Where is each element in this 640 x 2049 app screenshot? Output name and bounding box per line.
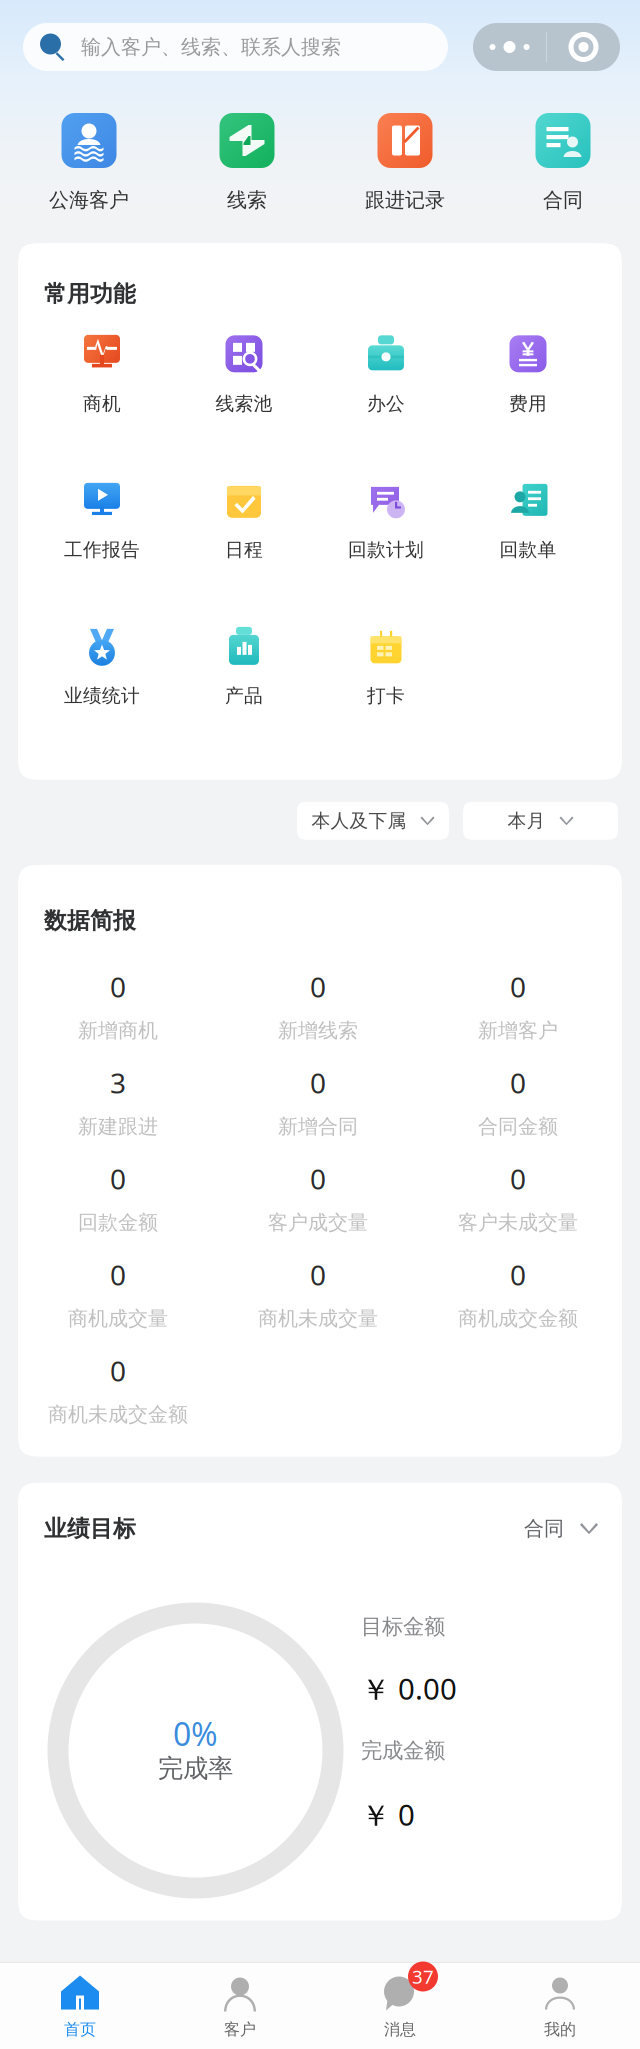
button[interactable]: 跟进记录 (326, 113, 484, 210)
staticText: 新增商机 (78, 1018, 158, 1043)
staticText: 商机未成交量 (258, 1306, 378, 1331)
staticText: 我的 (544, 2020, 576, 2039)
staticText: 新增客户 (478, 1018, 558, 1043)
staticText: 业绩目标 (44, 1515, 136, 1542)
button[interactable]: 日程 (173, 476, 315, 562)
button[interactable]: 费用 (457, 330, 599, 416)
staticText: 首页 (64, 2020, 96, 2039)
staticText: 3 (110, 1064, 126, 1101)
staticText: 0 (310, 968, 326, 1005)
staticText: 常用功能 (44, 280, 136, 308)
staticText: 完成金额 (361, 1737, 445, 1764)
staticText: 客户 (224, 2020, 256, 2039)
button[interactable]: 首页 (0, 1963, 160, 2049)
staticText: 跟进记录 (365, 188, 445, 212)
staticText: 产品 (225, 684, 263, 707)
staticText: 0 (110, 1256, 126, 1293)
staticText: 线索池 (215, 392, 272, 415)
staticText: 商机 (83, 392, 121, 415)
staticText: 消息 (384, 2020, 416, 2039)
staticText: 数据简报 (44, 907, 136, 935)
button[interactable]: 工作报告 (31, 476, 173, 562)
staticText: 商机未成交金额 (48, 1402, 188, 1427)
staticText: 费用 (509, 392, 547, 415)
staticText: 0 (110, 968, 126, 1005)
button[interactable]: 输入客户、线索、联系人搜索 (23, 23, 448, 71)
button[interactable]: 线索池 (173, 330, 315, 416)
button[interactable]: 公海客户 (10, 113, 168, 210)
staticText: 新增线索 (278, 1018, 358, 1043)
button[interactable]: 我的 (480, 1963, 640, 2049)
staticText: 完成率 (158, 1753, 233, 1784)
staticText: 输入客户、线索、联系人搜索 (81, 35, 341, 59)
staticText: 公海客户 (49, 188, 129, 212)
button[interactable]: 业绩统计 (31, 622, 173, 708)
button[interactable]: 合同 (524, 1516, 598, 1541)
staticText: 0% (173, 1712, 218, 1755)
staticText: 0 (510, 1256, 526, 1293)
staticText: 0 (110, 1352, 126, 1389)
button[interactable]: 本月 (463, 802, 618, 840)
button[interactable]: 回款单 (457, 476, 599, 562)
staticText: 合同 (543, 188, 583, 212)
button[interactable]: 回款计划 (315, 476, 457, 562)
button[interactable]: 办公 (315, 330, 457, 416)
staticText: 回款单 (499, 538, 556, 561)
staticText: 本人及下属 (311, 809, 406, 832)
button[interactable]: 更多 (473, 23, 620, 71)
staticText: 合同 (524, 1516, 564, 1541)
staticText: 回款计划 (348, 538, 424, 561)
staticText: 业绩统计 (64, 684, 140, 707)
staticText: 0 (510, 1160, 526, 1197)
button[interactable]: 合同 (484, 113, 640, 210)
staticText: 回款金额 (78, 1210, 158, 1235)
staticText: 0 (310, 1160, 326, 1197)
staticText: 新增合同 (278, 1114, 358, 1139)
staticText: 商机成交量 (68, 1306, 168, 1331)
staticText: 0 (310, 1256, 326, 1293)
staticText: 0 (110, 1160, 126, 1197)
button[interactable]: 本人及下属 (297, 802, 449, 840)
button[interactable]: 打卡 (315, 622, 457, 708)
staticText: ￥ 0.00 (361, 1669, 457, 1708)
staticText: 目标金额 (361, 1613, 445, 1640)
staticText: 日程 (225, 538, 263, 561)
staticText: 客户成交量 (268, 1210, 368, 1235)
staticText: 新建跟进 (78, 1114, 158, 1139)
button[interactable]: 产品 (173, 622, 315, 708)
button[interactable]: 37 (320, 1963, 480, 2049)
staticText: 0 (510, 1064, 526, 1101)
staticText: 0 (510, 968, 526, 1005)
staticText: 合同金额 (478, 1114, 558, 1139)
staticText: ￥ 0 (361, 1795, 415, 1834)
button[interactable]: 客户 (160, 1963, 320, 2049)
staticText: 商机成交金额 (458, 1306, 578, 1331)
staticText: 0 (310, 1064, 326, 1101)
staticText: 线索 (227, 188, 267, 212)
staticText: 打卡 (367, 684, 405, 707)
staticText: 办公 (367, 392, 405, 415)
button[interactable]: 商机 (31, 330, 173, 416)
staticText: 本月 (507, 809, 545, 832)
button[interactable]: 线索 (168, 113, 326, 210)
staticText: 37 (412, 1964, 434, 1989)
staticText: 客户未成交量 (458, 1210, 578, 1235)
staticText: 工作报告 (64, 538, 140, 561)
